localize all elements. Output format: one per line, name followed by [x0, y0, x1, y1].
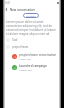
button[interactable]: project/team — [6, 44, 58, 50]
button[interactable]: projects/team conversation — [12, 51, 58, 62]
button[interactable]: Connect — [23, 13, 39, 18]
staticText: Task — [12, 38, 18, 42]
staticText: New conversation — [10, 8, 35, 12]
staticText: 2 days ago — [19, 57, 32, 60]
staticText: project/team — [12, 45, 29, 49]
staticText: a week ago — [19, 68, 32, 71]
button[interactable]: Back — [3, 6, 10, 13]
staticText: Launched campaign — [19, 64, 47, 68]
button[interactable]: Launched campaign — [12, 62, 58, 73]
staticText: projects/team conversation — [19, 53, 57, 57]
button[interactable]: Task — [6, 37, 58, 43]
staticText: Lorem ipsum dolor sit amet consectetur a… — [6, 20, 57, 36]
staticText: 9:41 — [5, 1, 11, 5]
staticText: Connect — [26, 14, 36, 17]
